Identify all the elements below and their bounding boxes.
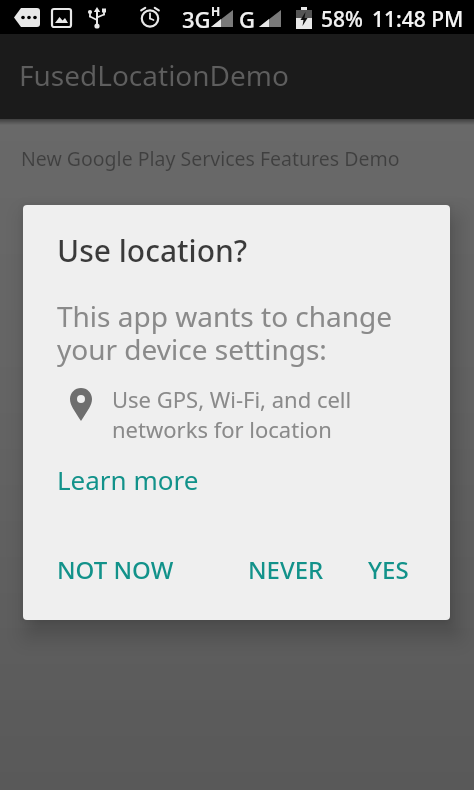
staticText: NEVER [248,553,324,586]
staticText: This app wants to change your device set… [57,297,393,368]
button[interactable]: NEVER [236,541,336,598]
staticText: 11:48 PM [372,5,464,34]
staticText: H [211,3,221,19]
staticText: FusedLocationDemo [19,56,289,94]
staticText: Use GPS, Wi-Fi, and cell networks for lo… [112,384,352,444]
staticText: Use location? [57,230,248,271]
staticText: New Google Play Services Features Demo [21,145,400,172]
button[interactable]: Learn more [45,452,211,507]
staticText: YES [368,553,409,586]
staticText: NOT NOW [57,553,174,586]
button[interactable]: YES [356,541,421,598]
staticText: 58% [321,5,363,34]
button[interactable]: NOT NOW [45,541,186,598]
staticText: Learn more [57,462,199,497]
staticText: 3G [182,4,211,34]
staticText: G [239,4,255,34]
